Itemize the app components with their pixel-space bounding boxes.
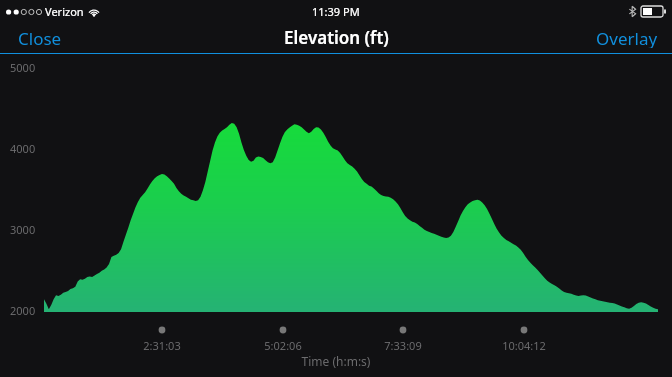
staticText: 2:31:03 bbox=[122, 338, 202, 353]
button[interactable]: Overlay bbox=[582, 22, 672, 53]
button[interactable]: Close bbox=[0, 22, 80, 53]
staticText: 2000 bbox=[10, 303, 36, 318]
staticText: 5000 bbox=[10, 60, 36, 75]
staticText: Time (h:m:s) bbox=[0, 353, 672, 369]
staticText: Overlay bbox=[596, 27, 658, 48]
staticText: 3000 bbox=[10, 222, 36, 237]
staticText: Verizon bbox=[45, 4, 84, 19]
staticText: Close bbox=[18, 27, 62, 48]
other: Bluetooth bbox=[629, 6, 636, 17]
other: Battery bbox=[641, 6, 666, 17]
staticText: 5:02:06 bbox=[243, 338, 323, 353]
staticText: 11:39 PM bbox=[312, 4, 360, 19]
other: Wi-Fi bbox=[88, 7, 100, 17]
staticText: 4000 bbox=[10, 141, 36, 156]
staticText: 10:04:12 bbox=[484, 338, 564, 353]
staticText: Elevation (ft) bbox=[284, 26, 389, 49]
staticText: 7:33:09 bbox=[363, 338, 443, 353]
